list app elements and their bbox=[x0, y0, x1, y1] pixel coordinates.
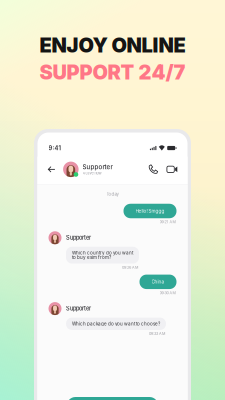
staticText: Today bbox=[106, 192, 118, 197]
staticText: 9:41 bbox=[48, 144, 60, 152]
button[interactable]: Voice call bbox=[146, 164, 160, 174]
staticText: China bbox=[151, 279, 164, 285]
staticText: ENJOY ONLINE bbox=[39, 33, 185, 57]
staticText: 09:30 AM bbox=[159, 291, 175, 295]
staticText: SUPPORT 24/7 bbox=[39, 60, 185, 84]
staticText: Supporter bbox=[83, 163, 113, 171]
staticText: Supporter bbox=[66, 234, 91, 241]
staticText: Active now bbox=[83, 171, 102, 175]
staticText: 09:26 AM bbox=[122, 265, 138, 270]
staticText: Which package do you want to choose? bbox=[72, 321, 160, 326]
staticText: Hello! Smggg bbox=[135, 208, 164, 214]
staticText: Supporter bbox=[66, 305, 91, 312]
button[interactable]: Back bbox=[47, 163, 63, 176]
staticText: to buy esim from? bbox=[72, 255, 111, 260]
staticText: 09:33 AM bbox=[149, 331, 165, 336]
staticText: 09:21 AM bbox=[159, 220, 175, 224]
staticText: Which country do you want bbox=[72, 250, 133, 256]
button[interactable]: Video call bbox=[160, 166, 177, 172]
